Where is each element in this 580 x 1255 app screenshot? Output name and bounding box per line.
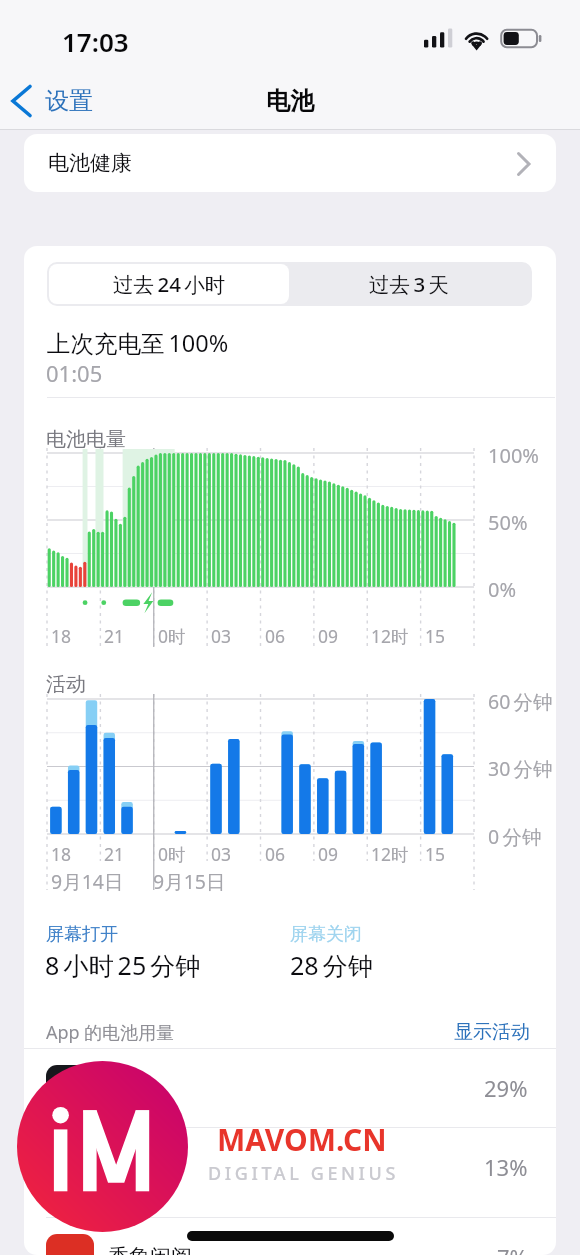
staticText: MAVOM.CN	[217, 1119, 387, 1160]
staticText: 0 分钟	[488, 823, 542, 850]
staticText: 18	[51, 624, 72, 648]
staticText: 15	[425, 624, 446, 648]
staticText: 21	[104, 842, 125, 866]
staticText: 上次充电至 100%	[47, 327, 229, 359]
staticText: 03	[211, 624, 232, 648]
staticText: 过去 24 小时	[113, 270, 226, 298]
staticText: DIGITAL GENIUS	[208, 1161, 399, 1186]
staticText: 运动	[108, 1154, 150, 1180]
staticText: 过去 3 天	[369, 270, 450, 298]
staticText: 29%	[484, 1073, 528, 1103]
staticText: 13%	[484, 1152, 528, 1182]
staticText: 30 分钟	[488, 755, 553, 782]
other: Back	[8, 83, 36, 119]
staticText: 60 分钟	[488, 688, 553, 715]
staticText: 电池健康	[48, 150, 132, 176]
button[interactable]: 电池健康	[24, 134, 556, 192]
staticText: 09	[318, 624, 339, 648]
button[interactable]: 过去 3 天	[289, 264, 530, 304]
staticText: 06	[265, 842, 286, 866]
staticText: 12时	[371, 624, 409, 648]
staticText: 09	[318, 842, 339, 866]
button[interactable]: Back	[8, 80, 93, 122]
staticText: 28 分钟	[290, 948, 373, 982]
staticText: 03	[211, 842, 232, 866]
button[interactable]: 显示活动	[454, 1020, 530, 1044]
staticText: 活动	[46, 672, 86, 697]
staticText: 0时	[158, 842, 186, 866]
staticText: 0时	[158, 624, 186, 648]
staticText: 0%	[488, 576, 517, 603]
staticText: App 的电池用量	[46, 1020, 175, 1045]
staticText: 设置	[45, 86, 93, 116]
staticText: 香象闲阅	[108, 1244, 192, 1255]
staticText: 8 小时 25 分钟	[45, 948, 201, 982]
staticText: 21	[104, 624, 125, 648]
staticText: 12时	[371, 842, 409, 866]
staticText: 电池电量	[46, 427, 126, 452]
staticText: 9月15日	[153, 868, 226, 895]
button[interactable]: 过去 24 小时	[49, 264, 289, 304]
staticText: 屏幕打开	[46, 923, 118, 946]
staticText: 9月14日	[51, 868, 124, 895]
staticText: 01:05	[46, 358, 103, 388]
staticText: 电池	[266, 86, 314, 116]
button[interactable]: 香象闲阅	[24, 1217, 556, 1255]
button[interactable]: 29%	[24, 1048, 556, 1127]
staticText: 06	[265, 624, 286, 648]
staticText: 100%	[488, 442, 539, 469]
staticText: 18	[51, 842, 72, 866]
staticText: 50%	[488, 509, 528, 536]
staticText: 屏幕关闭	[290, 923, 362, 946]
button[interactable]: 运动	[24, 1127, 556, 1206]
staticText: 15	[425, 842, 446, 866]
staticText: 17:03	[62, 24, 129, 59]
staticText: 显示活动	[454, 1020, 530, 1044]
staticText: 7%	[497, 1242, 528, 1255]
